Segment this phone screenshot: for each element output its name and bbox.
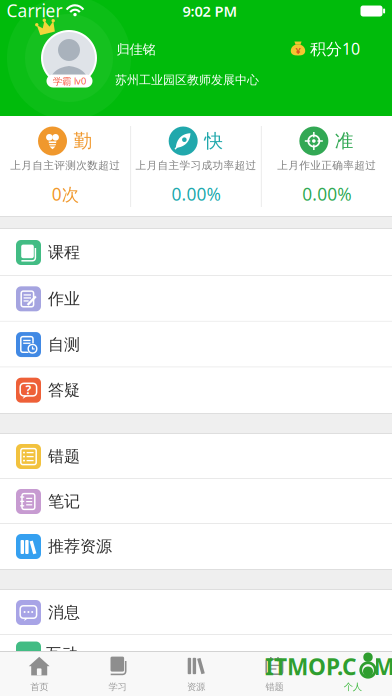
button[interactable]: 作业 <box>0 276 392 322</box>
staticText: 准 <box>335 129 354 152</box>
button[interactable]: 学习 <box>78 651 157 696</box>
staticText: 消息 <box>48 603 80 622</box>
staticText: ¥ <box>295 44 300 57</box>
button[interactable]: 笔记 <box>0 479 392 524</box>
staticText: 笔记 <box>48 492 80 511</box>
staticText: 0次 <box>52 182 79 205</box>
staticText: 错题 <box>265 681 283 693</box>
staticText: 答疑 <box>48 380 80 400</box>
staticText: 快 <box>204 129 223 152</box>
button[interactable]: 自测 <box>0 322 392 367</box>
staticText: 苏州工业园区教师发展中心 <box>115 73 259 87</box>
staticText: 作业 <box>48 289 80 309</box>
button[interactable]: 资源 <box>157 651 235 696</box>
button[interactable]: 首页 <box>0 651 78 696</box>
button[interactable]: 个人 <box>314 651 392 696</box>
staticText: 课程 <box>48 243 80 262</box>
staticText: 上月自主评测次数超过 <box>10 159 120 172</box>
button[interactable]: 错题 <box>0 434 392 479</box>
button[interactable]: 互动 <box>0 635 392 651</box>
staticText: 9:02 PM <box>182 1 237 21</box>
staticText: 首页 <box>30 681 48 693</box>
staticText: 上月自主学习成功率超过 <box>135 159 256 172</box>
staticText: 积分10 <box>310 38 360 59</box>
staticText: Carrier <box>6 0 62 22</box>
staticText: 互动 <box>46 644 78 664</box>
button[interactable]: 课程 <box>0 229 392 276</box>
button[interactable]: 消息 <box>0 590 392 635</box>
staticText: 错题 <box>48 447 80 466</box>
staticText: M <box>373 651 392 681</box>
staticText: 学习 <box>109 681 127 693</box>
staticText: 学霸 lv0 <box>53 75 86 87</box>
button[interactable]: ¥ <box>290 38 360 59</box>
staticText: 自测 <box>48 335 80 354</box>
button[interactable]: 个人资料 <box>0 0 140 116</box>
staticText: 0.00% <box>302 182 351 205</box>
staticText: 0.00% <box>171 182 220 205</box>
staticText: 归佳铭 <box>116 41 155 58</box>
button[interactable]: ? <box>0 367 392 413</box>
staticText: 勤 <box>73 129 92 152</box>
staticText: ITMOP.C <box>265 651 357 681</box>
staticText: 个人 <box>344 681 362 693</box>
staticText: 资源 <box>187 681 205 693</box>
staticText: ? <box>25 382 31 397</box>
staticText: 推荐资源 <box>48 537 112 556</box>
button[interactable]: 错题 <box>235 651 314 696</box>
staticText: 上月作业正确率超过 <box>277 159 376 172</box>
button[interactable]: 推荐资源 <box>0 524 392 569</box>
